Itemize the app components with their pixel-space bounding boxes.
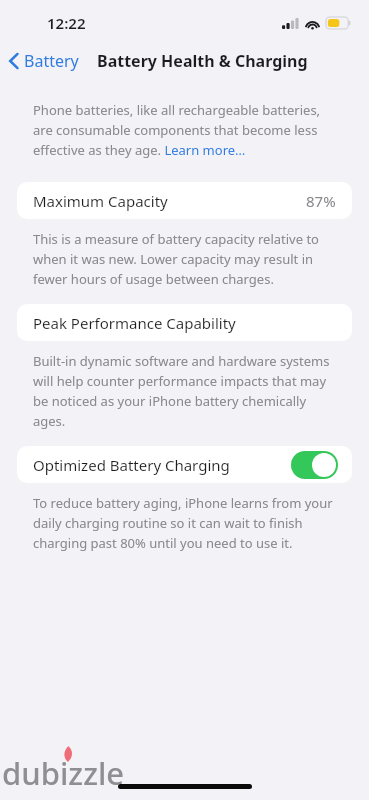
button[interactable]: Maximum Capacity [17,182,352,219]
button[interactable]: Optimized Battery Charging [17,446,352,483]
staticText: izzle [60,752,125,794]
staticText: Battery Health & Charging [97,50,308,72]
staticText: Battery [24,50,79,72]
button[interactable]: Optimized Battery Charging toggle, on [291,451,338,479]
staticText: Optimized Battery Charging [33,455,291,475]
staticText: Peak Performance Capability [33,313,336,333]
staticText: dub [2,752,60,794]
staticText: 87% [306,191,336,211]
staticText: Built-in dynamic software and hardware s… [33,352,341,430]
staticText: Maximum Capacity [33,191,306,211]
button[interactable]: Peak Performance Capability [17,304,352,341]
staticText: 12:22 [47,13,86,33]
staticText: To reduce battery aging, iPhone learns f… [33,494,341,552]
staticText: This is a measure of battery capacity re… [33,230,341,288]
staticText: Phone batteries, like all rechargeable b… [33,101,341,159]
button[interactable]: Battery [0,46,85,76]
